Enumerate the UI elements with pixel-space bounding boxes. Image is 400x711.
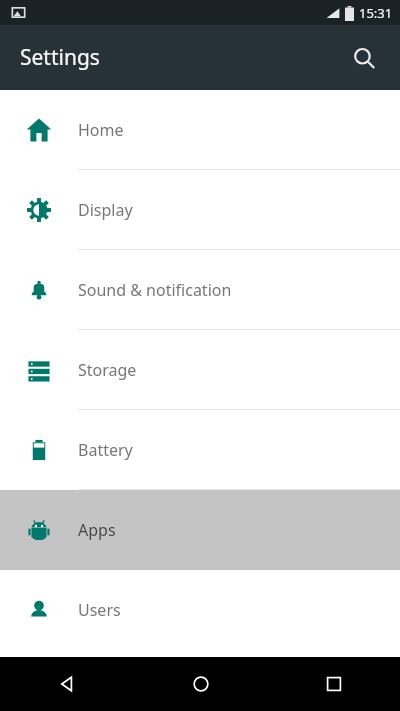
staticText: 15:31 xyxy=(359,4,393,22)
button[interactable]: Storage xyxy=(0,330,400,410)
button[interactable]: Search xyxy=(340,34,388,82)
staticText: Home xyxy=(78,119,124,141)
button[interactable]: Apps xyxy=(0,490,400,570)
staticText: Display xyxy=(78,199,133,221)
button[interactable]: Display xyxy=(0,170,400,250)
staticText: Users xyxy=(78,599,121,621)
button[interactable]: Back xyxy=(0,657,134,711)
button[interactable]: Home xyxy=(134,657,267,711)
staticText: Apps xyxy=(78,519,116,541)
button[interactable]: Home xyxy=(0,90,400,170)
staticText: Storage xyxy=(78,359,137,381)
button[interactable]: Users xyxy=(0,570,400,650)
button[interactable]: Battery xyxy=(0,410,400,490)
button[interactable]: Sound & notification xyxy=(0,250,400,330)
staticText: Battery xyxy=(78,439,133,461)
staticText: Settings xyxy=(20,43,100,72)
staticText: Sound & notification xyxy=(78,279,232,301)
button[interactable]: Recent apps xyxy=(267,657,400,711)
